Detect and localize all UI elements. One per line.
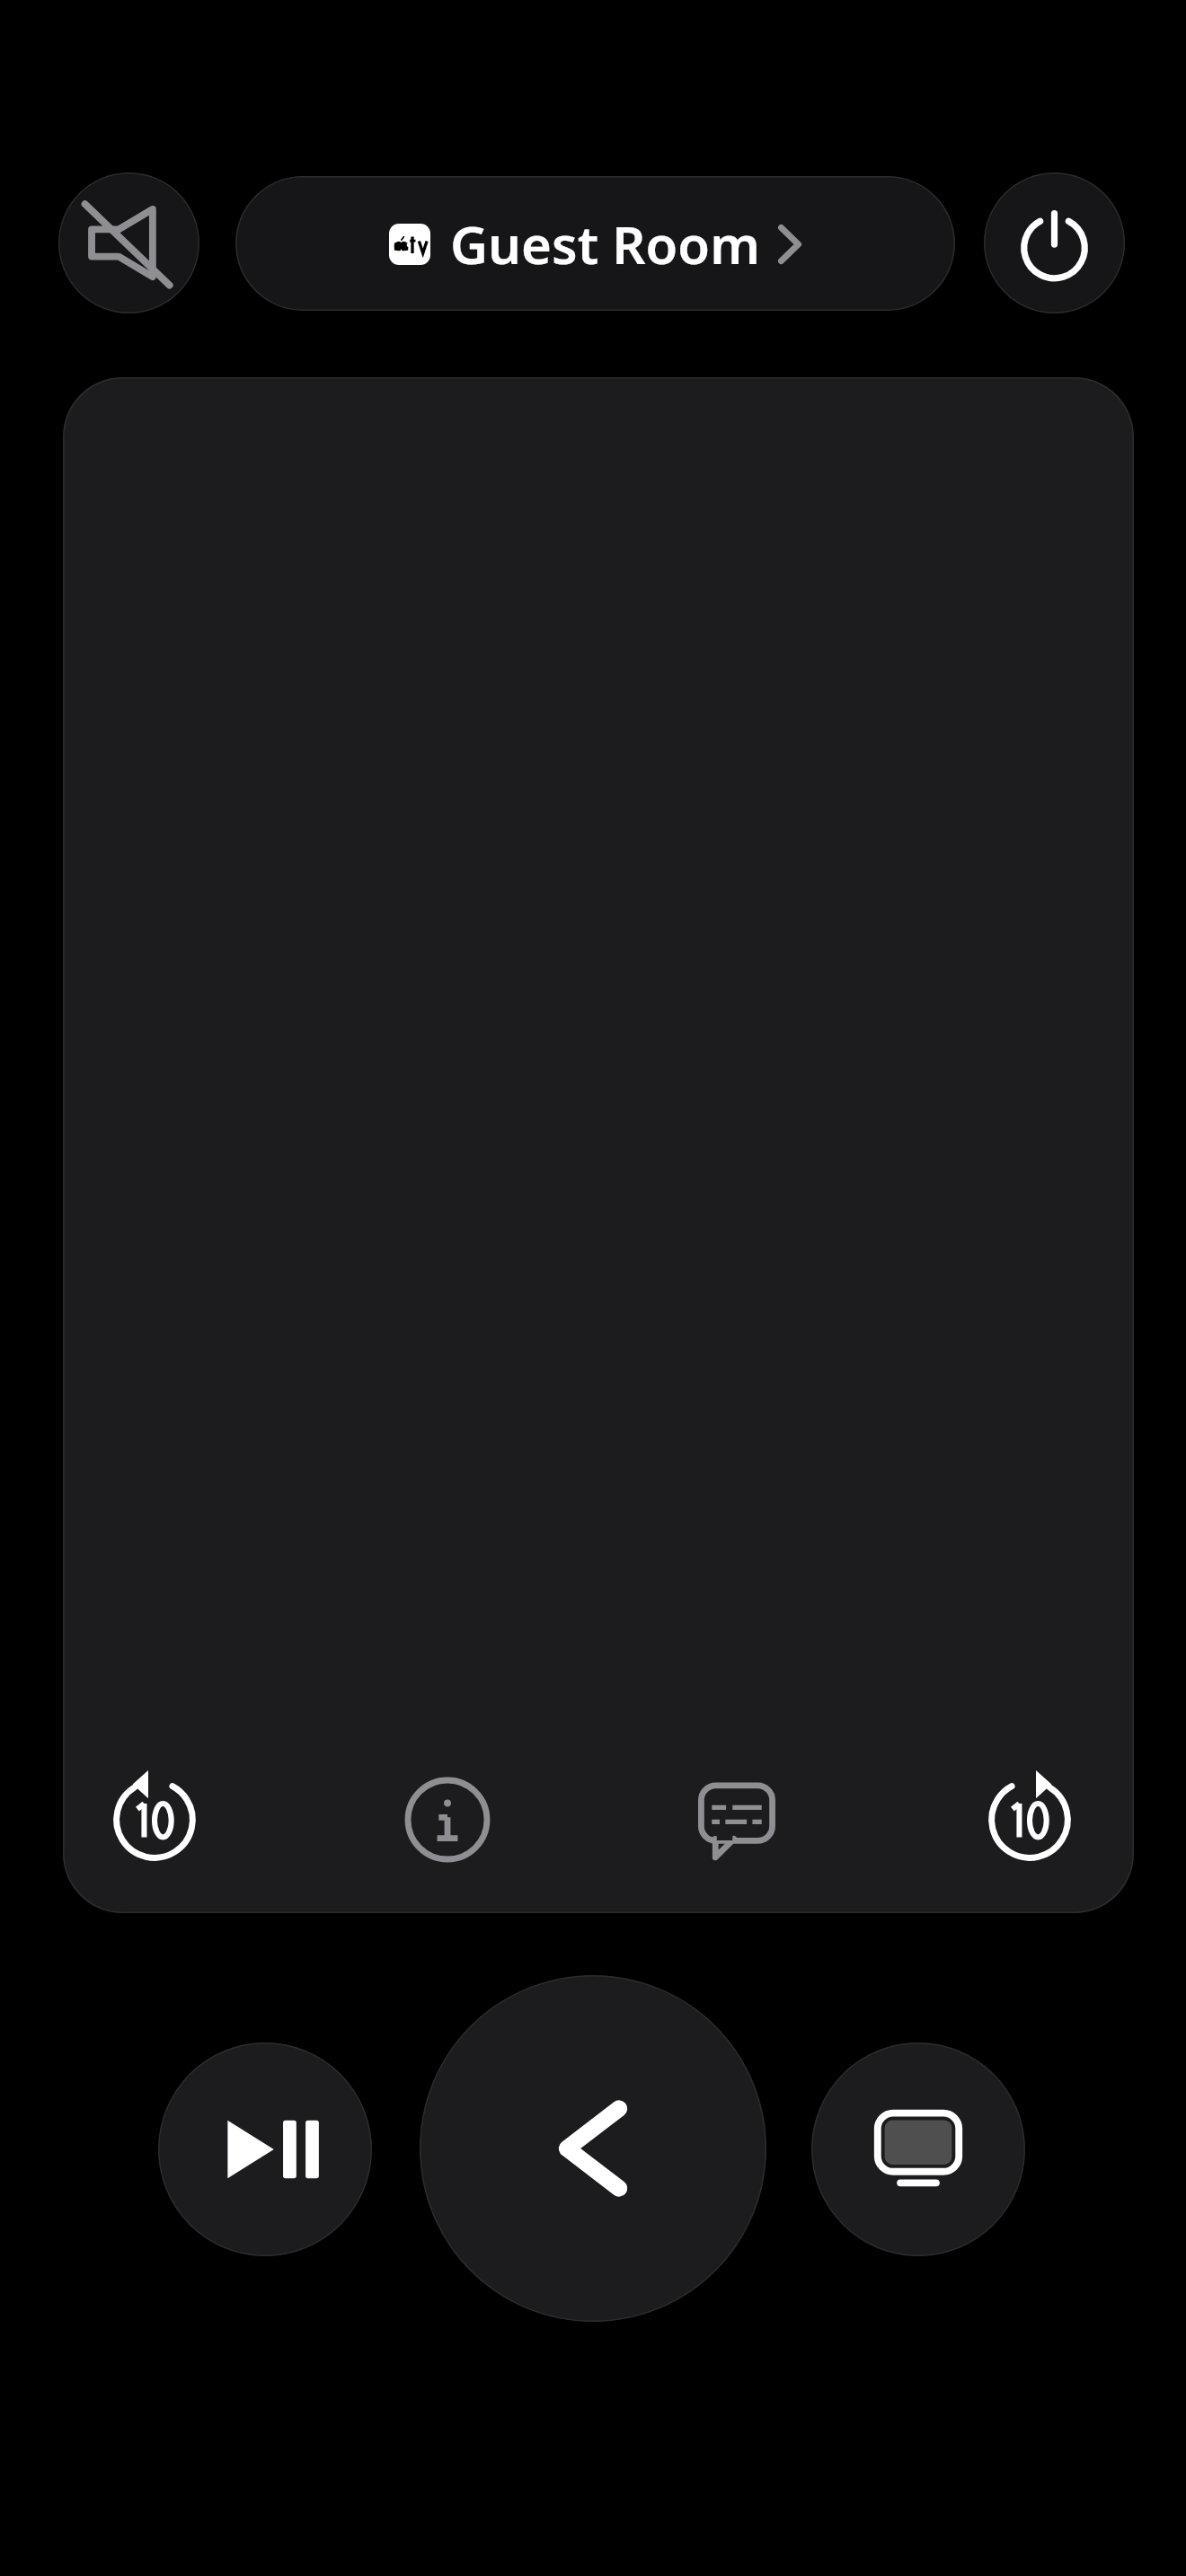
button[interactable]: Play or pause: [158, 2042, 372, 2256]
button[interactable]: Mute: [58, 172, 199, 313]
button[interactable]: Power: [984, 172, 1125, 313]
staticText: Guest Room: [450, 208, 760, 279]
button[interactable]: Skip back 10 seconds: [63, 377, 1134, 1913]
button[interactable]: Info: [373, 1745, 522, 1894]
button[interactable]: Skip forward 10 seconds: [955, 1745, 1104, 1894]
button[interactable]: TV: [811, 2042, 1025, 2256]
button[interactable]: Guest Room: [235, 176, 955, 311]
button[interactable]: Subtitles: [662, 1745, 811, 1894]
button[interactable]: Skip back 10 seconds: [80, 1745, 229, 1894]
button[interactable]: Back: [420, 1975, 766, 2322]
